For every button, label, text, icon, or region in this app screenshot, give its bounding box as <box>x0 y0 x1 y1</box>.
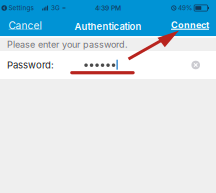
staticText: Password: <box>7 59 54 71</box>
button[interactable]: Cancel <box>9 19 42 33</box>
staticText: Connect <box>171 19 209 30</box>
button[interactable]: Settings <box>1 4 33 12</box>
staticText: 4:39 PM <box>95 4 121 12</box>
button[interactable]: Clear password <box>188 58 203 72</box>
staticText: 49% <box>178 4 192 12</box>
staticText: Authentication <box>74 21 141 32</box>
staticText: Cancel <box>9 19 42 32</box>
staticText: Please enter your password. <box>7 39 128 50</box>
staticText: Settings <box>8 4 33 12</box>
button[interactable]: Connect <box>171 19 209 33</box>
staticText: 3G <box>51 4 60 12</box>
